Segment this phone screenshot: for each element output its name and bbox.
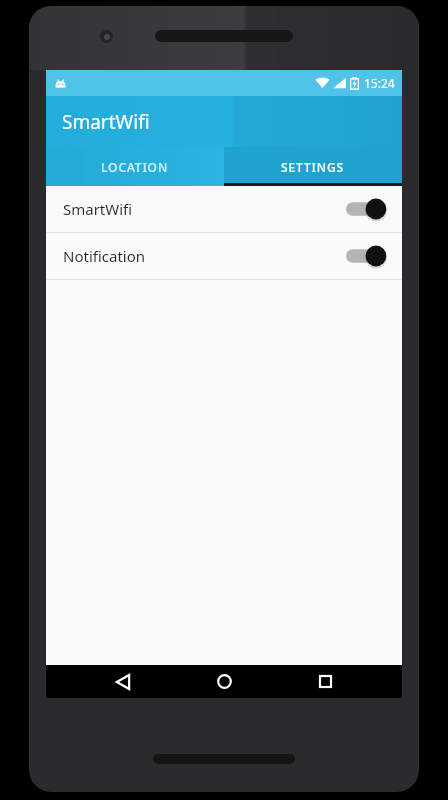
staticText: 15:24 xyxy=(364,75,395,91)
staticText: LOCATION xyxy=(101,159,169,175)
button[interactable]: Home xyxy=(200,665,248,698)
staticText: SmartWifi xyxy=(62,109,150,135)
button[interactable]: SETTINGS xyxy=(224,147,402,186)
button[interactable]: Notification xyxy=(46,233,402,279)
button[interactable]: SmartWifi toggle xyxy=(346,196,390,222)
button[interactable]: LOCATION xyxy=(46,147,224,186)
button[interactable]: Notification toggle xyxy=(346,243,390,269)
button[interactable]: Back xyxy=(99,665,147,698)
staticText: SETTINGS xyxy=(281,159,345,175)
staticText: Notification xyxy=(63,246,146,266)
button[interactable]: Recent apps xyxy=(301,665,349,698)
staticText: SmartWifi xyxy=(63,199,133,219)
button[interactable]: SmartWifi xyxy=(46,186,402,232)
